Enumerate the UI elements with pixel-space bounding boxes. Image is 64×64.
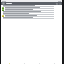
button[interactable] <box>1 5 62 7</box>
button[interactable]: Open navigation menu <box>2 2 5 5</box>
button[interactable]: Settings <box>47 62 62 64</box>
button[interactable]: Search <box>56 3 58 5</box>
button[interactable]: Home <box>1 62 17 64</box>
button[interactable]: Chats <box>17 62 32 64</box>
button[interactable] <box>1 9 62 11</box>
button[interactable] <box>1 15 62 17</box>
button[interactable] <box>1 13 62 15</box>
button[interactable] <box>1 11 62 13</box>
button[interactable]: Calls <box>32 62 47 64</box>
button[interactable] <box>1 17 62 19</box>
button[interactable] <box>1 7 62 9</box>
